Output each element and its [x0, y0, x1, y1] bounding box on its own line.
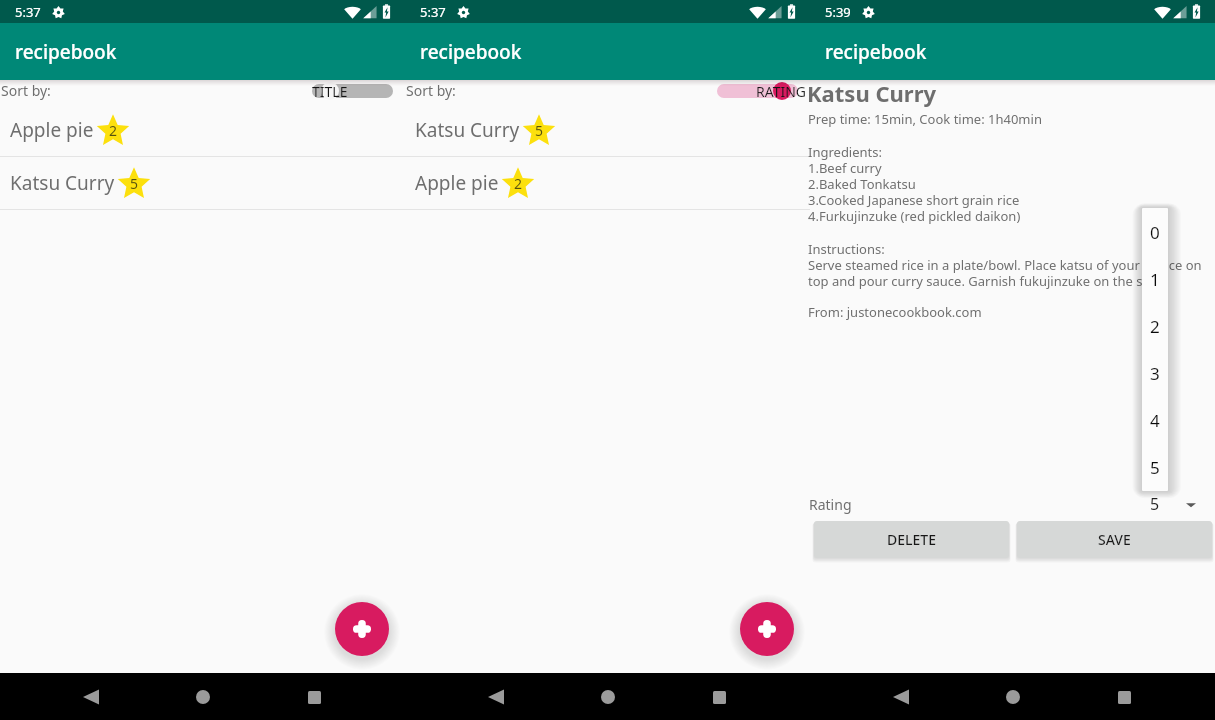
- staticText: Katsu Curry: [10, 170, 115, 196]
- staticText: Ingredients: 1.Beef curry 2.Baked Tonkat…: [808, 143, 1021, 224]
- button[interactable]: 3: [1142, 350, 1168, 397]
- staticText: 5: [1150, 456, 1160, 479]
- button[interactable]: Recent apps: [1103, 676, 1145, 718]
- staticText: Katsu Curry: [807, 78, 937, 108]
- button[interactable]: 4: [1142, 397, 1168, 444]
- button[interactable]: Apple pie: [0, 104, 405, 156]
- staticText: recipebook: [825, 39, 927, 65]
- staticText: Instructions: Serve steamed rice in a pl…: [808, 240, 1202, 289]
- staticText: TITLE: [312, 82, 348, 101]
- staticText: 1: [1150, 268, 1160, 291]
- button[interactable]: Back: [70, 676, 112, 718]
- staticText: 2: [1150, 315, 1160, 338]
- staticText: 5:37: [420, 3, 446, 21]
- button[interactable]: Home: [182, 676, 224, 718]
- button[interactable]: Home: [587, 676, 629, 718]
- staticText: 3: [1150, 362, 1160, 385]
- staticText: 5:37: [15, 3, 41, 21]
- staticText: 5: [1150, 493, 1160, 515]
- staticText: recipebook: [420, 39, 522, 65]
- button[interactable]: Home: [992, 676, 1034, 718]
- button[interactable]: Katsu Curry: [0, 157, 405, 209]
- staticText: Sort by:: [1, 81, 51, 100]
- button[interactable]: Recent apps: [698, 676, 740, 718]
- button[interactable]: Add recipe: [335, 602, 389, 656]
- button[interactable]: SAVE: [1017, 521, 1212, 558]
- staticText: 5:39: [825, 3, 851, 21]
- button[interactable]: 2: [1142, 303, 1168, 350]
- button[interactable]: 5: [1142, 444, 1168, 491]
- button[interactable]: 0: [1142, 208, 1168, 256]
- staticText: 2: [514, 174, 523, 193]
- staticText: RATING: [756, 82, 807, 101]
- button[interactable]: Back: [880, 676, 922, 718]
- button[interactable]: TITLE: [312, 79, 393, 103]
- staticText: SAVE: [1098, 530, 1131, 549]
- staticText: Sort by:: [406, 81, 456, 100]
- staticText: 0: [1150, 221, 1160, 244]
- staticText: 2: [109, 121, 118, 140]
- staticText: 5: [535, 121, 544, 140]
- staticText: Katsu Curry: [415, 117, 520, 143]
- staticText: Prep time: 15min, Cook time: 1h40min: [808, 110, 1042, 128]
- staticText: From: justonecookbook.com: [808, 303, 982, 321]
- button[interactable]: Katsu Curry: [405, 104, 810, 156]
- staticText: DELETE: [887, 530, 936, 549]
- button[interactable]: Back: [475, 676, 517, 718]
- staticText: 5: [130, 174, 139, 193]
- staticText: recipebook: [15, 39, 117, 65]
- staticText: 4: [1150, 409, 1160, 432]
- staticText: Apple pie: [415, 170, 499, 196]
- staticText: Apple pie: [10, 117, 94, 143]
- button[interactable]: RATING: [717, 79, 798, 103]
- button[interactable]: DELETE: [814, 521, 1009, 558]
- button[interactable]: Apple pie: [405, 157, 810, 209]
- button[interactable]: Recent apps: [293, 676, 335, 718]
- button[interactable]: 1: [1142, 256, 1168, 303]
- button[interactable]: Add recipe: [740, 602, 794, 656]
- staticText: Rating: [809, 495, 852, 514]
